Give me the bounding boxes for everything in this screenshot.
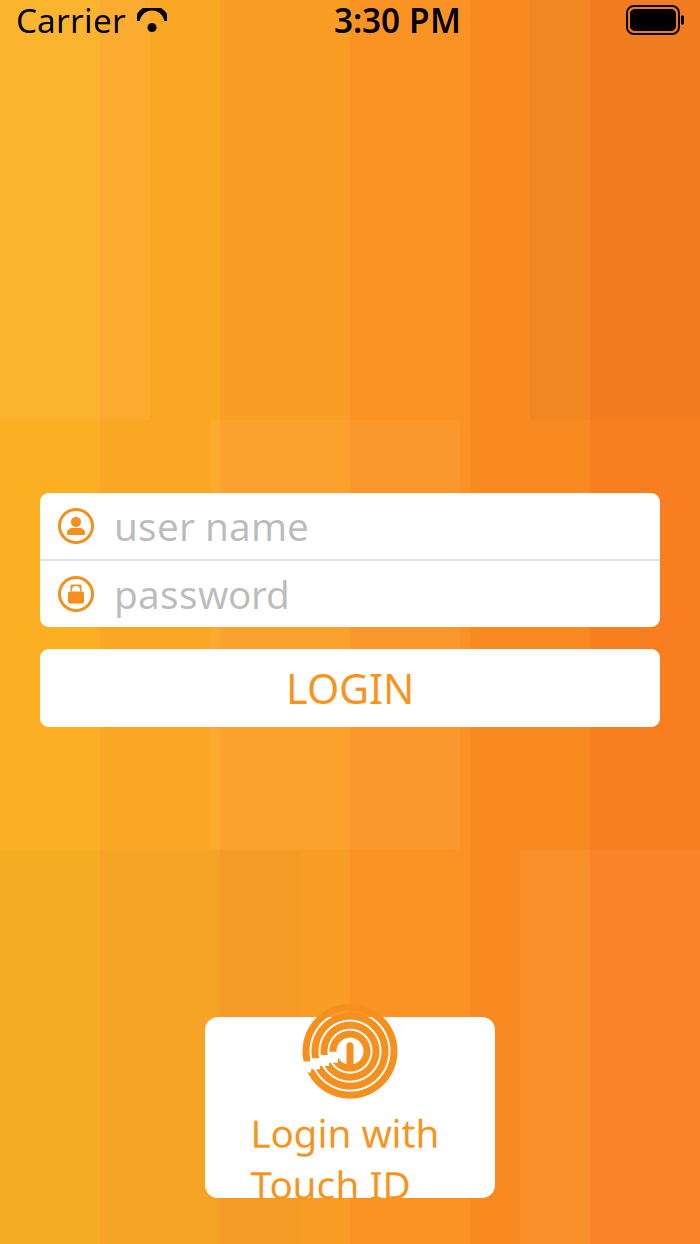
button[interactable]: password <box>40 561 660 627</box>
staticText: 3:30 PM <box>334 0 461 42</box>
button[interactable]: Login with Touch ID <box>205 1017 495 1198</box>
staticText: password <box>114 568 290 620</box>
staticText: user name <box>114 500 309 552</box>
button[interactable]: LOGIN <box>40 649 660 727</box>
button[interactable]: user name <box>40 493 660 559</box>
staticText: LOGIN <box>286 661 414 715</box>
staticText: Login with Touch ID <box>250 1107 449 1210</box>
staticText: Carrier <box>16 0 126 42</box>
